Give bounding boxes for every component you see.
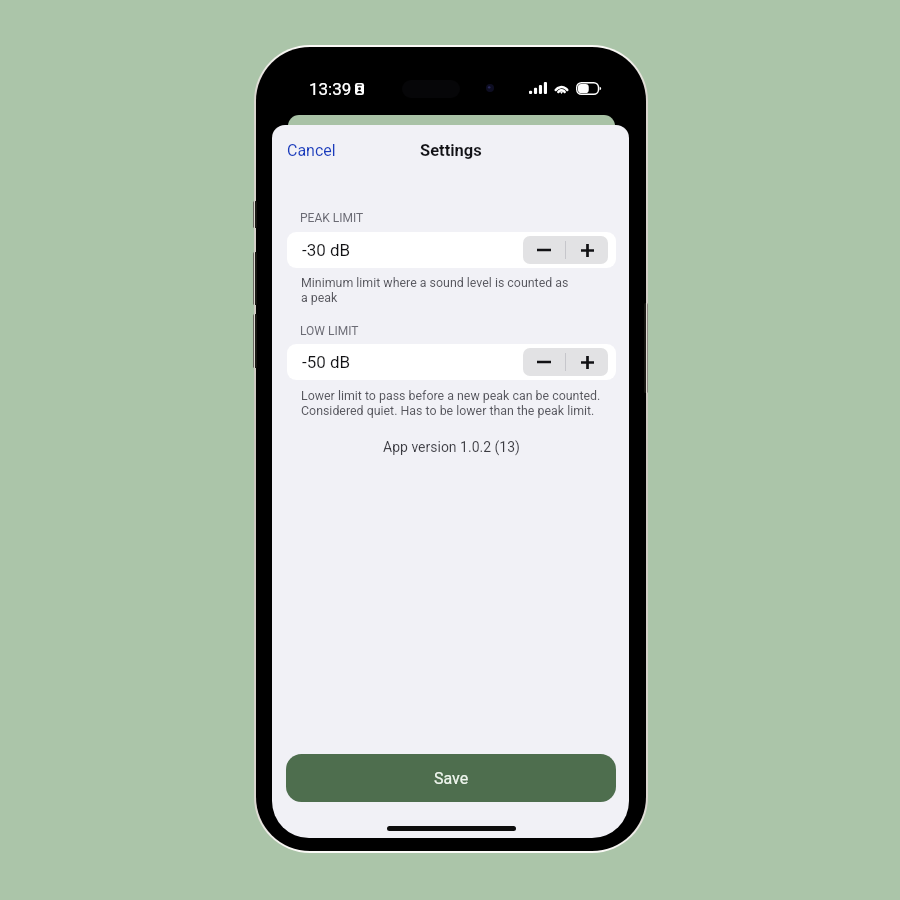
- button[interactable]: Increase: [566, 236, 608, 264]
- staticText: PEAK LIMIT: [300, 211, 364, 225]
- staticText: -30 dB: [302, 240, 351, 260]
- staticText: Cancel: [287, 141, 336, 160]
- button[interactable]: Save: [286, 754, 616, 802]
- staticText: -50 dB: [302, 352, 351, 372]
- button[interactable]: Cancel: [280, 136, 343, 165]
- staticText: Minimum limit where a sound level is cou…: [301, 275, 569, 305]
- staticText: 13:39: [309, 79, 352, 99]
- button[interactable]: Decrease: [523, 348, 565, 376]
- staticText: LOW LIMIT: [300, 324, 359, 338]
- staticText: Lower limit to pass before a new peak ca…: [301, 388, 601, 418]
- button[interactable]: Increase: [566, 348, 608, 376]
- staticText: Settings: [420, 141, 482, 160]
- button[interactable]: Decrease: [523, 236, 565, 264]
- staticText: App version 1.0.2 (13): [383, 439, 520, 455]
- staticText: Save: [434, 769, 469, 788]
